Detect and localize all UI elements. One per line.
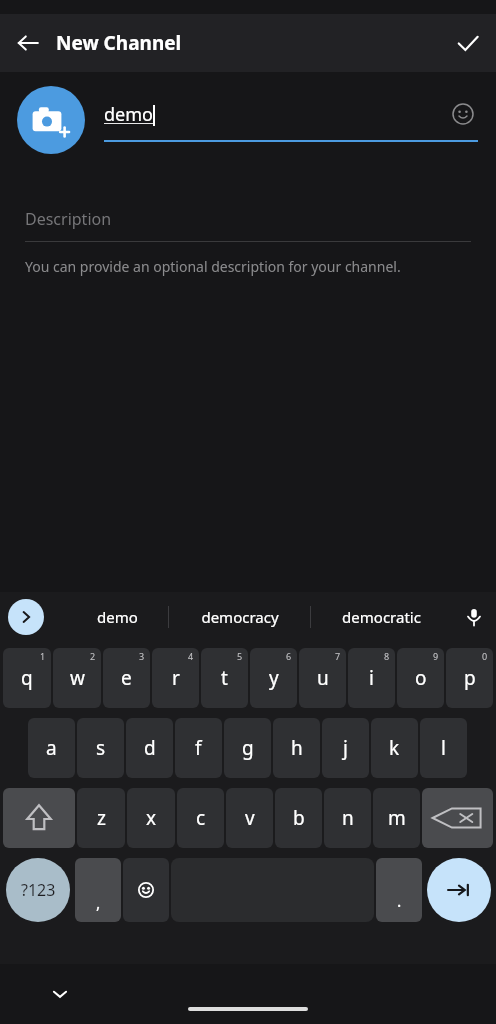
button[interactable]: Emoji keyboard	[123, 858, 169, 922]
staticText: .	[397, 890, 402, 912]
staticText: n	[342, 805, 354, 831]
staticText: New Channel	[56, 30, 182, 56]
staticText: l	[441, 735, 446, 761]
button[interactable]: p	[446, 648, 493, 708]
staticText: 4	[188, 650, 194, 662]
button[interactable]: ?123	[3, 858, 73, 922]
button[interactable]: demo	[66, 592, 168, 642]
button[interactable]: democracy	[169, 592, 310, 642]
staticText: 5	[237, 650, 243, 662]
staticText: f	[195, 735, 202, 761]
staticText: 3	[139, 650, 145, 662]
staticText: s	[96, 735, 106, 761]
button[interactable]: m	[373, 788, 420, 848]
button[interactable]: o	[397, 648, 444, 708]
staticText: 8	[384, 650, 390, 662]
button[interactable]: t	[201, 648, 248, 708]
button[interactable]: Hide keyboard	[42, 976, 78, 1012]
staticText: r	[172, 665, 180, 691]
staticText: ,	[96, 892, 101, 914]
button[interactable]: democratic	[311, 592, 452, 642]
button[interactable]: Next	[424, 858, 493, 922]
button[interactable]: y	[250, 648, 297, 708]
staticText: v	[245, 805, 255, 831]
button[interactable]: .	[376, 858, 422, 922]
button[interactable]: l	[420, 718, 467, 778]
button[interactable]: Set channel photo	[17, 86, 85, 154]
button[interactable]: v	[226, 788, 273, 848]
button[interactable]: Emoji	[448, 99, 478, 129]
staticText: 6	[286, 650, 292, 662]
button[interactable]: Done	[440, 15, 496, 71]
button[interactable]: g	[224, 718, 271, 778]
staticText: e	[121, 665, 132, 691]
staticText: g	[242, 735, 254, 761]
button[interactable]: n	[324, 788, 371, 848]
staticText: 0	[482, 650, 488, 662]
staticText: w	[70, 665, 85, 691]
button[interactable]: i	[348, 648, 395, 708]
button[interactable]: a	[28, 718, 75, 778]
staticText: democracy	[201, 607, 279, 627]
staticText: Description	[25, 208, 112, 230]
button[interactable]: b	[275, 788, 322, 848]
button[interactable]: Backspace	[422, 788, 493, 848]
button[interactable]: Back	[0, 15, 56, 71]
staticText: c	[196, 805, 206, 831]
button[interactable]: w	[53, 648, 101, 708]
staticText: q	[21, 665, 33, 691]
button[interactable]: q	[3, 648, 51, 708]
staticText: h	[291, 735, 303, 761]
staticText: demo	[97, 607, 138, 627]
staticText: t	[221, 665, 228, 691]
staticText: 9	[433, 650, 439, 662]
staticText: a	[46, 735, 57, 761]
staticText: j	[343, 735, 348, 761]
button[interactable]: f	[175, 718, 222, 778]
staticText: You can provide an optional description …	[25, 257, 401, 276]
staticText: 2	[90, 650, 96, 662]
button[interactable]: ,	[75, 858, 121, 922]
staticText: ?123	[21, 879, 56, 901]
staticText: b	[293, 805, 305, 831]
staticText: democratic	[342, 607, 421, 627]
button[interactable]: k	[371, 718, 418, 778]
button[interactable]: More suggestions	[8, 599, 44, 635]
button[interactable]: s	[77, 718, 124, 778]
button[interactable]: c	[177, 788, 224, 848]
staticText: x	[146, 805, 157, 831]
button[interactable]: x	[127, 788, 175, 848]
button[interactable]: d	[126, 718, 173, 778]
staticText: o	[415, 665, 427, 691]
button[interactable]: Shift	[3, 788, 75, 848]
staticText: i	[369, 665, 374, 691]
button[interactable]: h	[273, 718, 320, 778]
staticText: z	[97, 805, 106, 831]
button[interactable]: r	[152, 648, 199, 708]
button[interactable]: Voice input	[452, 592, 496, 642]
staticText: 7	[335, 650, 341, 662]
staticText: 1	[40, 650, 46, 662]
button[interactable]: e	[103, 648, 150, 708]
staticText: d	[144, 735, 156, 761]
staticText: u	[317, 665, 329, 691]
staticText: demo	[104, 102, 153, 127]
staticText: p	[464, 665, 476, 691]
button[interactable]: z	[77, 788, 125, 848]
staticText: m	[388, 805, 406, 831]
staticText: y	[269, 665, 279, 691]
button[interactable]: j	[322, 718, 369, 778]
button[interactable]: u	[299, 648, 346, 708]
staticText: k	[389, 735, 400, 761]
